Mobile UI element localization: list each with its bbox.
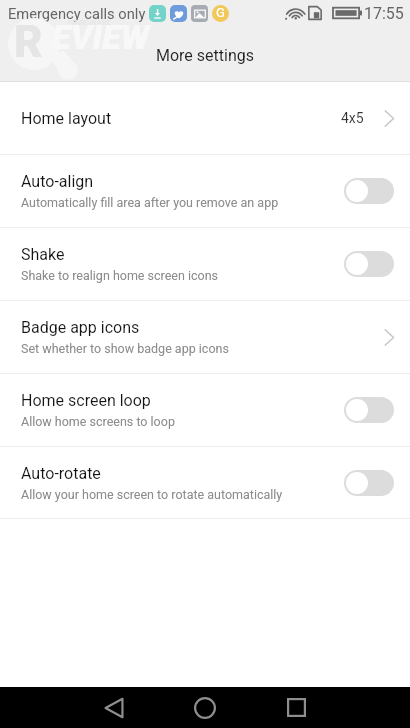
button[interactable]: Home bbox=[182, 687, 228, 728]
staticText: 17:55 bbox=[364, 4, 404, 23]
staticText: 4x5 bbox=[341, 110, 364, 126]
staticText: Allow home screens to loop bbox=[21, 414, 175, 429]
staticText: Set whether to show badge app icons bbox=[21, 341, 229, 356]
staticText: G bbox=[216, 5, 225, 20]
button[interactable]: Toggle Home screen loop bbox=[344, 397, 394, 423]
staticText: Automatically fill area after you remove… bbox=[21, 195, 279, 210]
button[interactable]: Toggle Auto-rotate bbox=[344, 470, 394, 496]
staticText: R bbox=[14, 16, 43, 68]
button[interactable]: Home layout bbox=[0, 82, 410, 154]
button[interactable]: Auto-align bbox=[0, 155, 410, 227]
staticText: Home layout bbox=[21, 109, 112, 128]
staticText: Auto-rotate bbox=[21, 464, 101, 483]
button[interactable]: Home screen loop bbox=[0, 374, 410, 446]
button[interactable]: Back bbox=[91, 687, 137, 728]
staticText: EVIEW bbox=[52, 17, 150, 57]
button[interactable]: Recent apps bbox=[273, 687, 319, 728]
staticText: Auto-align bbox=[21, 172, 94, 191]
staticText: Home screen loop bbox=[21, 391, 151, 410]
button[interactable]: Toggle Auto-align bbox=[344, 178, 394, 204]
staticText: Shake bbox=[21, 245, 65, 264]
staticText: Shake to realign home screen icons bbox=[21, 268, 219, 283]
staticText: Badge app icons bbox=[21, 318, 140, 337]
button[interactable]: Auto-rotate bbox=[0, 447, 410, 518]
staticText: Emergency calls only bbox=[8, 5, 146, 22]
staticText: HARDWARE bbox=[68, 18, 112, 27]
staticText: Allow your home screen to rotate automat… bbox=[21, 487, 283, 502]
button[interactable]: Toggle Shake bbox=[344, 251, 394, 277]
button[interactable]: Shake bbox=[0, 228, 410, 300]
button[interactable]: Badge app icons bbox=[0, 301, 410, 373]
staticText: More settings bbox=[156, 46, 254, 65]
